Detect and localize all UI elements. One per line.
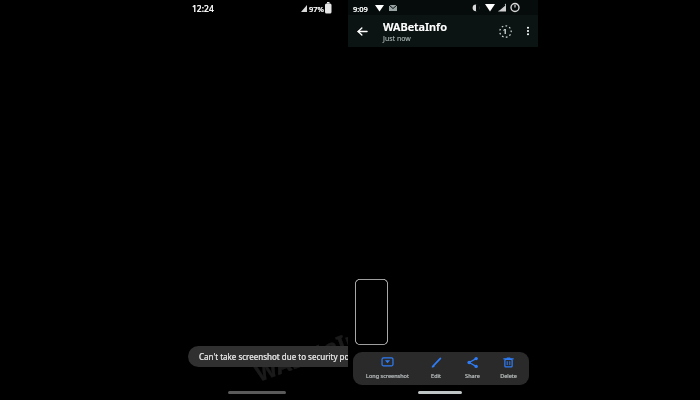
staticText: WABetaInfo: [251, 314, 385, 388]
staticText: WABetaInfo: [383, 19, 447, 34]
button[interactable]: More options: [518, 15, 538, 47]
staticText: Delete: [500, 372, 517, 379]
button[interactable]: Edit: [421, 352, 451, 385]
button[interactable]: Screenshot preview: [355, 279, 388, 345]
button[interactable]: WABetaInfo: [376, 15, 492, 47]
staticText: Share: [465, 372, 480, 379]
staticText: 1: [503, 27, 508, 37]
button[interactable]: Delete: [493, 352, 523, 385]
button[interactable]: Back: [348, 15, 376, 47]
button[interactable]: Disappearing messages: [492, 15, 518, 47]
staticText: 12:24: [192, 3, 214, 15]
button[interactable]: Long screenshot: [359, 352, 415, 385]
staticText: Can't take screenshot due to security po…: [199, 351, 364, 362]
button[interactable]: Can't take screenshot due to security po…: [188, 346, 375, 367]
staticText: 97%: [309, 4, 324, 14]
staticText: Long screenshot: [366, 372, 409, 379]
staticText: 9:09: [353, 4, 368, 14]
staticText: Edit: [431, 372, 441, 379]
staticText: Just now: [383, 34, 411, 44]
button[interactable]: Share: [457, 352, 487, 385]
